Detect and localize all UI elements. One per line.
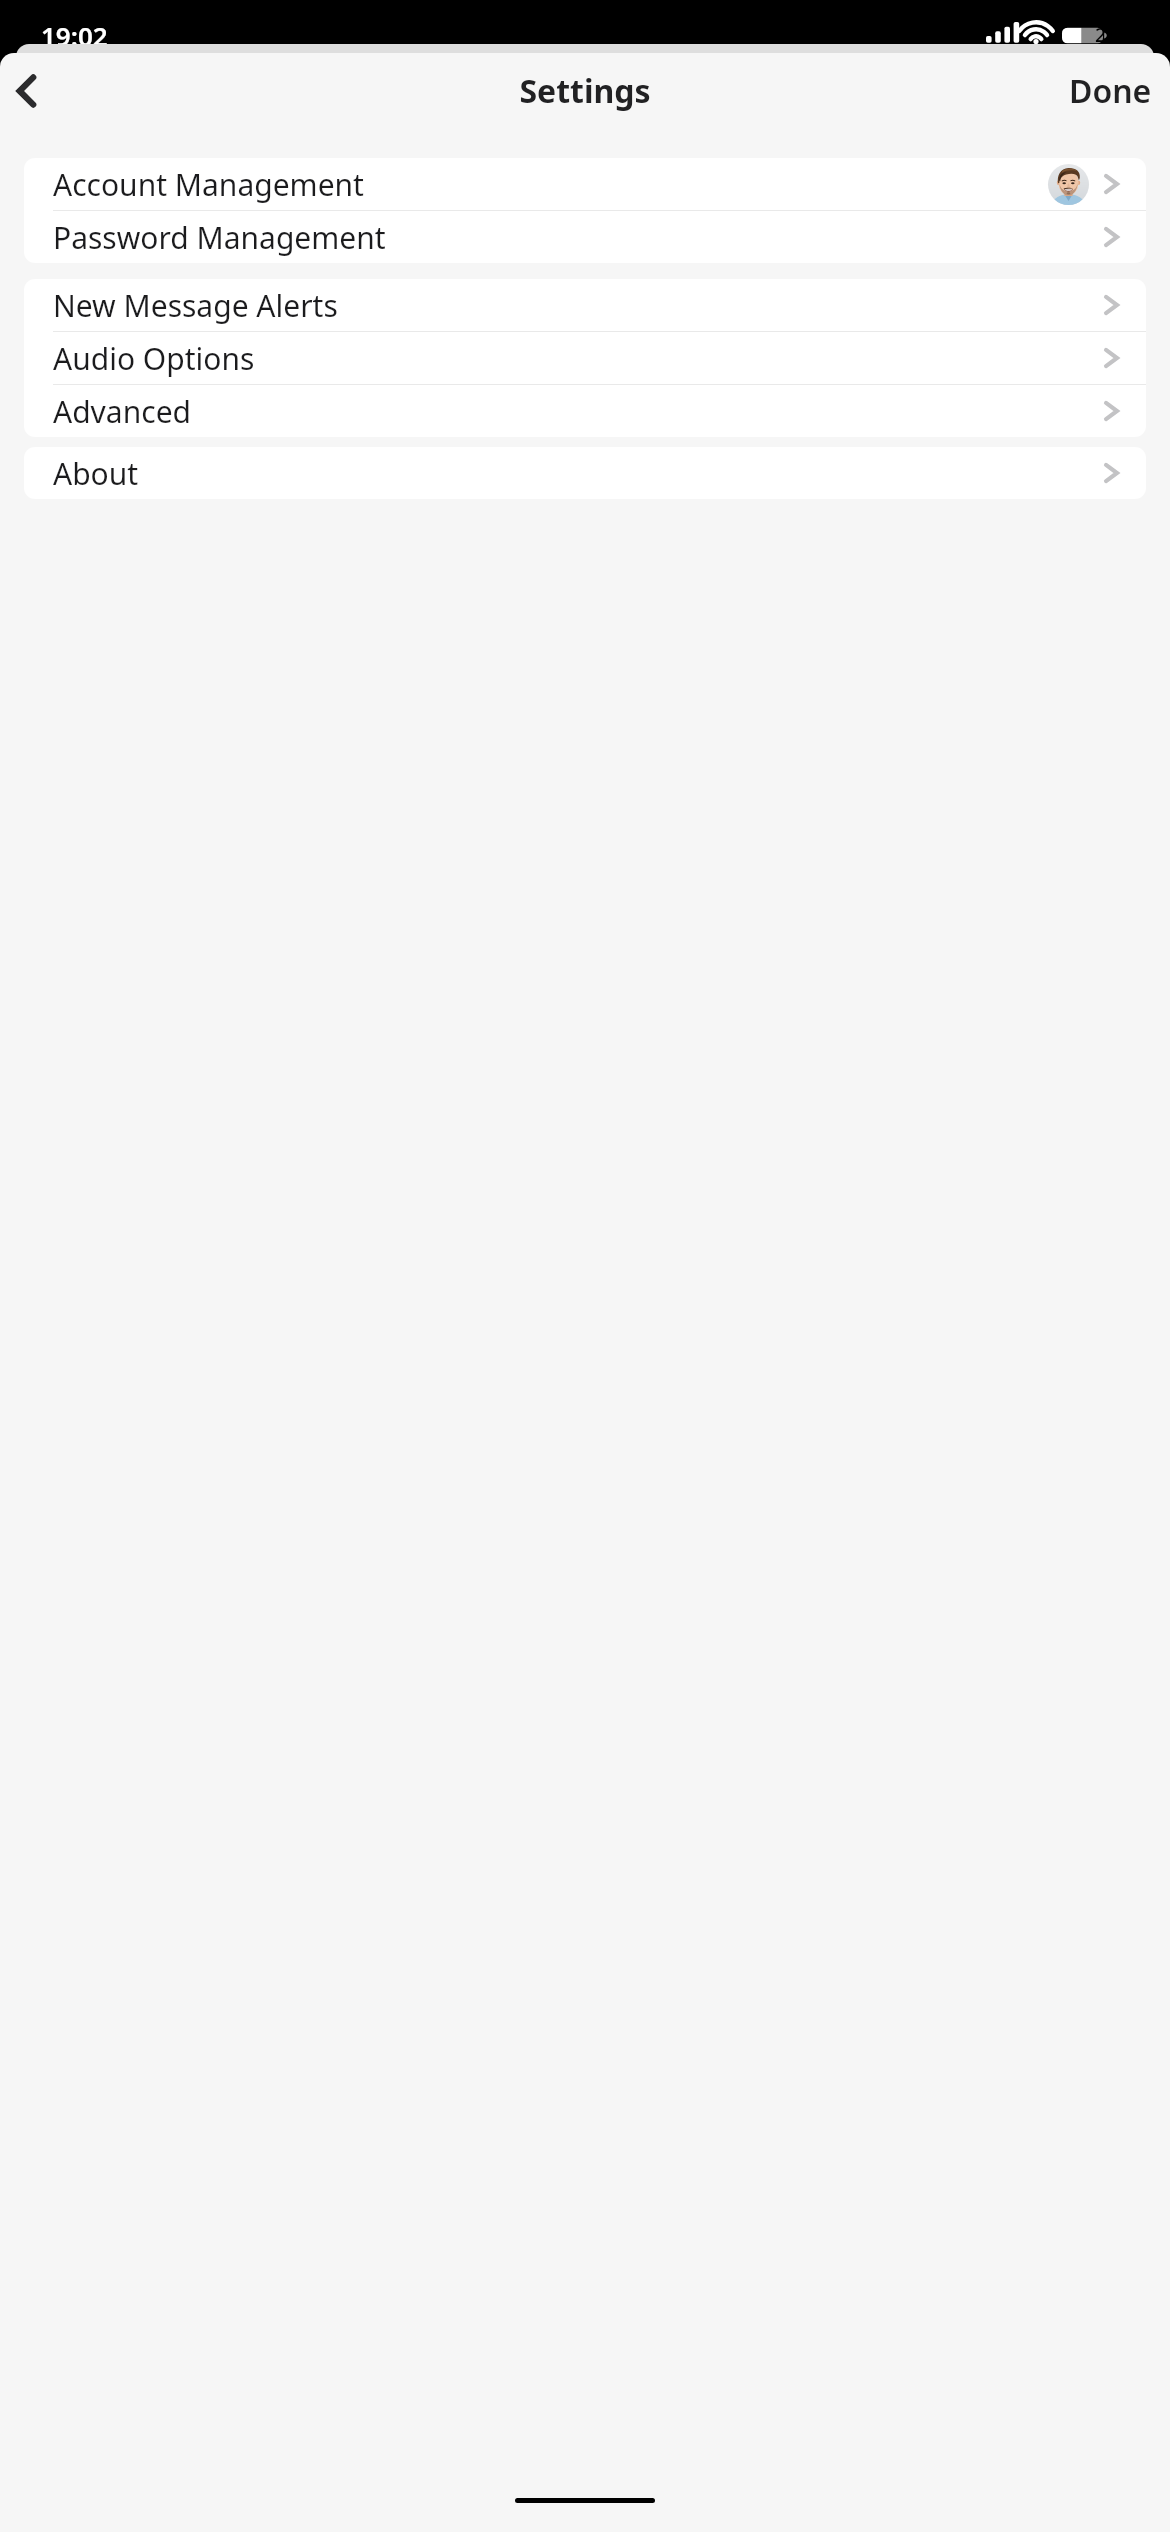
button[interactable]: Password Management xyxy=(24,211,1146,263)
button[interactable]: About xyxy=(24,447,1146,499)
staticText: 19:02 xyxy=(41,18,108,53)
staticText: Audio Options xyxy=(53,338,1101,379)
button[interactable]: Account Management xyxy=(24,158,1146,210)
staticText: New Message Alerts xyxy=(53,285,1101,326)
staticText: Account Management xyxy=(53,164,1048,205)
button[interactable]: Done xyxy=(1051,61,1170,121)
button[interactable]: Back xyxy=(4,69,48,113)
staticText: 28 xyxy=(1095,22,1117,48)
staticText: Advanced xyxy=(53,391,1101,432)
staticText: Password Management xyxy=(53,217,1101,258)
staticText: Done xyxy=(1069,69,1152,113)
button[interactable]: Audio Options xyxy=(24,332,1146,384)
button[interactable]: New Message Alerts xyxy=(24,279,1146,331)
staticText: Settings xyxy=(0,69,1170,113)
button[interactable]: Advanced xyxy=(24,385,1146,437)
staticText: About xyxy=(53,453,1101,494)
